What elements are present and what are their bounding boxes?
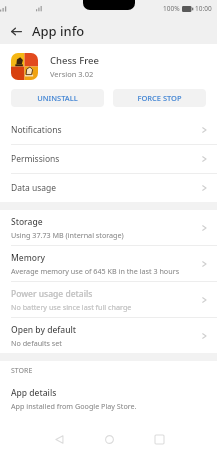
button[interactable]: Permissions	[0, 145, 217, 173]
staticText: Storage	[11, 216, 43, 228]
staticText: STORE	[11, 366, 33, 376]
staticText: Data usage	[11, 182, 201, 194]
button[interactable]: Data usage	[0, 174, 217, 202]
button[interactable]: App details	[0, 381, 217, 416]
staticText: Version 3.02	[50, 69, 94, 79]
staticText: App details	[11, 387, 57, 399]
staticText: Using 37.73 MB (internal storage)	[11, 230, 124, 240]
button[interactable]: FORCE STOP	[113, 89, 206, 107]
staticText: App installed from Google Play Store.	[11, 401, 137, 411]
button[interactable]: Back	[7, 22, 25, 40]
button[interactable]: Open by default	[0, 318, 217, 353]
staticText: No battery use since last full charge	[11, 302, 132, 312]
button[interactable]: Storage	[0, 210, 217, 245]
button[interactable]: Back	[42, 426, 76, 452]
staticText: App info	[32, 22, 85, 40]
staticText: Average memory use of 645 KB in the last…	[11, 266, 180, 276]
button[interactable]: Recents	[142, 426, 176, 452]
button[interactable]: Power usage details	[0, 282, 217, 317]
staticText: Open by default	[11, 324, 77, 336]
staticText: FORCE STOP	[137, 93, 182, 103]
staticText: UNINSTALL	[37, 93, 78, 103]
button[interactable]: UNINSTALL	[11, 89, 104, 107]
staticText: Permissions	[11, 153, 201, 165]
staticText: Power usage details	[11, 288, 93, 300]
staticText: 100%	[163, 4, 180, 13]
button[interactable]: Notifications	[0, 116, 217, 144]
button[interactable]: Home	[92, 426, 126, 452]
staticText: No defaults set	[11, 338, 62, 348]
button[interactable]: Memory	[0, 246, 217, 281]
staticText: Memory	[11, 252, 46, 264]
staticText: Notifications	[11, 124, 201, 136]
staticText: 10:00	[195, 4, 212, 13]
staticText: Chess Free	[50, 54, 99, 67]
